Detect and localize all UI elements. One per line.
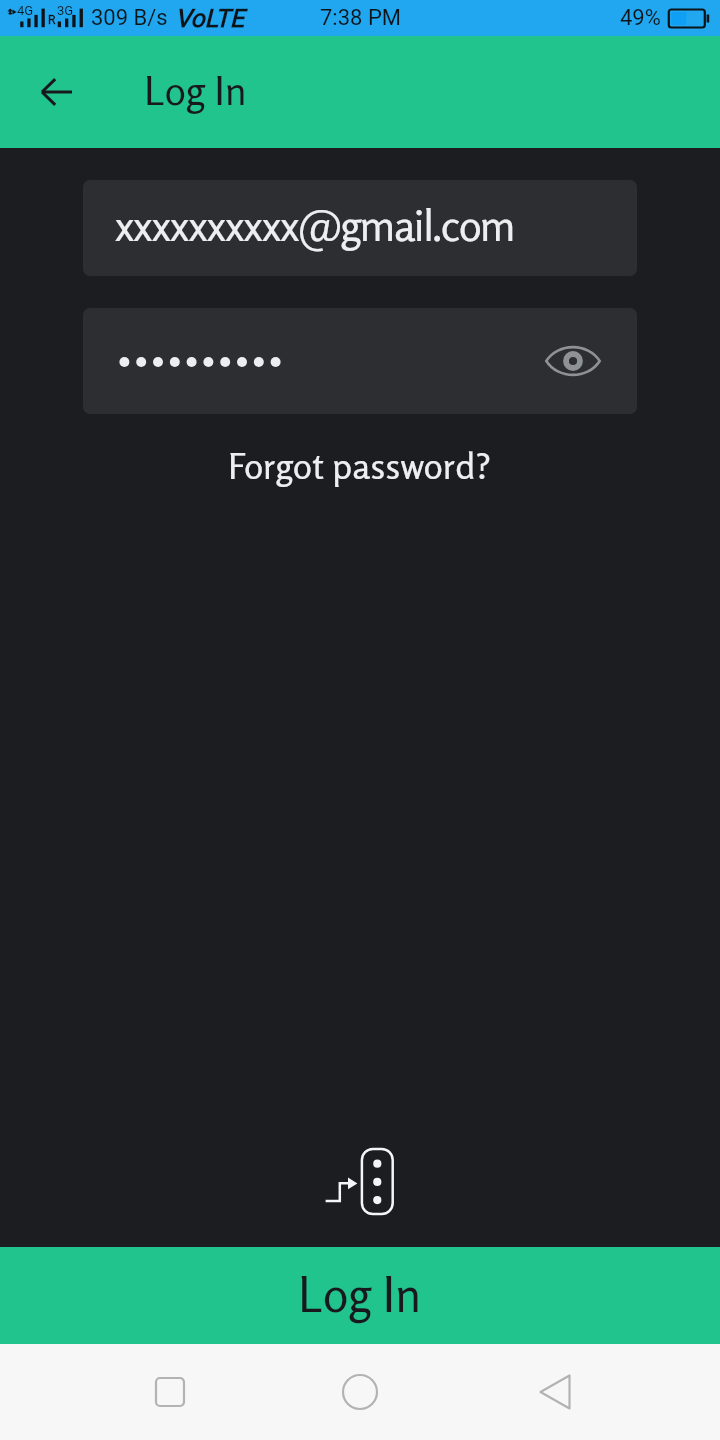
- staticText: R: [48, 13, 56, 27]
- button[interactable]: Back: [517, 1352, 597, 1432]
- button[interactable]: Recent apps: [130, 1352, 210, 1432]
- button[interactable]: Home: [320, 1352, 400, 1432]
- staticText: 3G: [57, 3, 74, 18]
- button[interactable]: Forgot password?: [216, 438, 504, 494]
- staticText: 309 B/s: [91, 5, 168, 31]
- staticText: 4G: [17, 3, 34, 18]
- staticText: Log In: [144, 66, 247, 114]
- staticText: 49%: [620, 5, 661, 31]
- staticText: VoLTE: [175, 4, 244, 33]
- staticText: xxxxxxxxxx@gmail.com: [115, 199, 515, 251]
- button[interactable]: Back: [24, 60, 88, 124]
- button[interactable]: Show password: [541, 329, 605, 393]
- button[interactable]: Log In: [0, 1247, 720, 1344]
- button[interactable]: xxxxxxxxxx@gmail.com: [83, 180, 637, 276]
- button[interactable]: Show password: [83, 308, 637, 414]
- staticText: Log In: [298, 1265, 422, 1323]
- staticText: 7:38 PM: [320, 5, 401, 31]
